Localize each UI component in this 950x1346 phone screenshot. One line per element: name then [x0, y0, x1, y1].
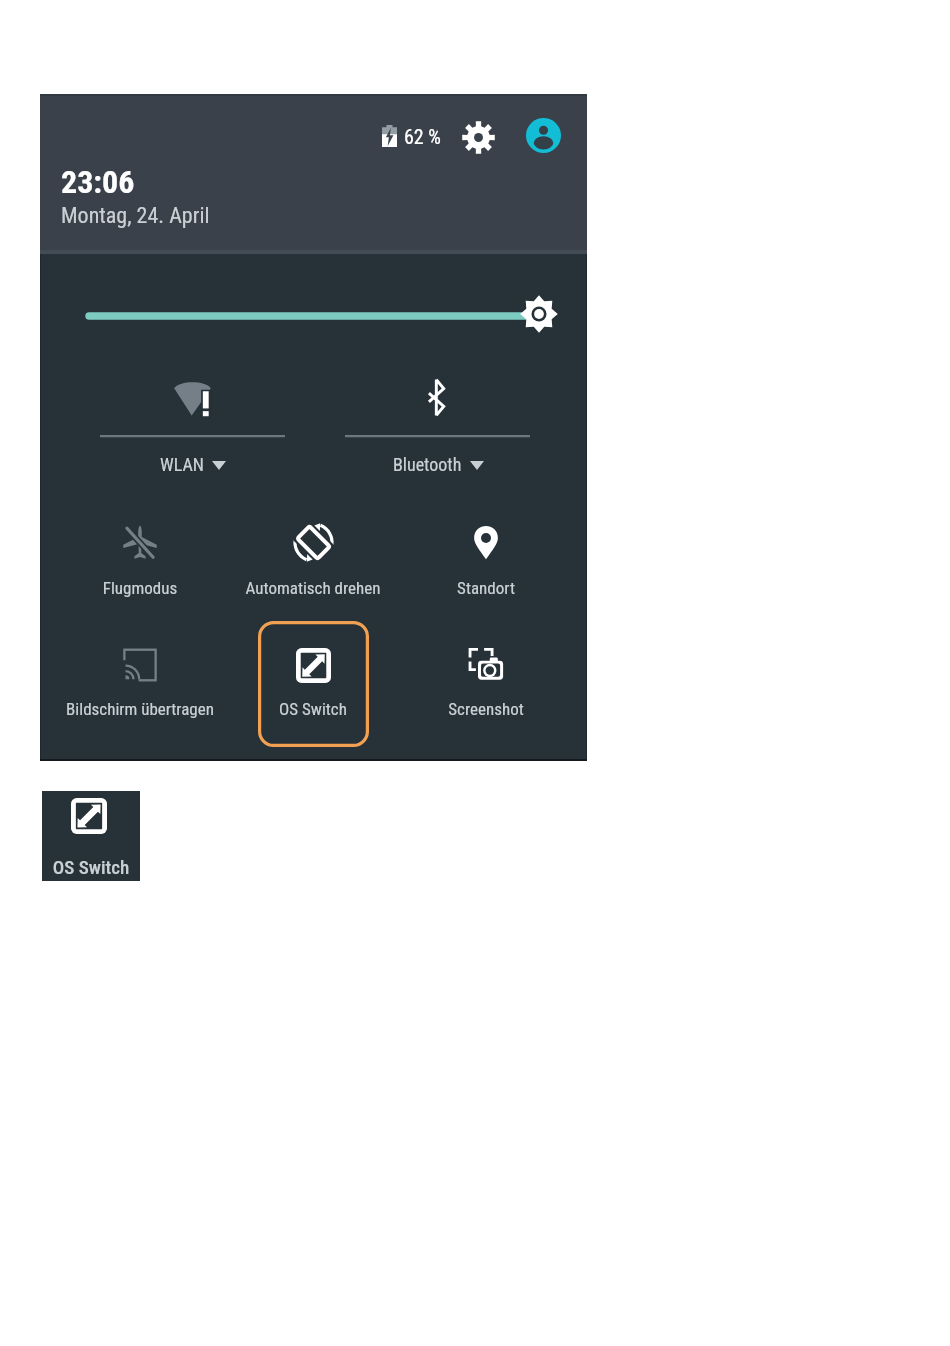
staticText: 62 % — [404, 125, 441, 148]
staticText: Standort — [376, 578, 596, 598]
staticText: Flugmodus — [30, 578, 250, 598]
staticText: Montag, 24. April — [61, 203, 210, 229]
button[interactable]: User account — [524, 116, 562, 154]
button[interactable] — [431, 498, 542, 624]
button[interactable]: Bluetooth — [326, 366, 550, 490]
staticText: OS Switch — [203, 699, 423, 719]
staticText: OS Switch — [42, 856, 140, 878]
staticText: Bildschirm übertragen — [30, 699, 250, 719]
button[interactable] — [258, 621, 369, 747]
button[interactable]: Brightness — [519, 294, 559, 334]
button[interactable]: WLAN — [81, 366, 305, 490]
staticText: WLAN — [160, 454, 204, 475]
button[interactable] — [258, 498, 369, 624]
staticText: Bluetooth — [393, 454, 462, 475]
staticText: Screenshot — [376, 699, 596, 719]
button[interactable]: OS Switch — [42, 791, 140, 881]
button[interactable] — [85, 498, 196, 624]
button[interactable] — [431, 621, 542, 747]
staticText: Automatisch drehen — [203, 578, 423, 598]
staticText: 23:06 — [61, 163, 135, 201]
button[interactable] — [85, 621, 196, 747]
button[interactable]: Settings — [458, 117, 498, 157]
